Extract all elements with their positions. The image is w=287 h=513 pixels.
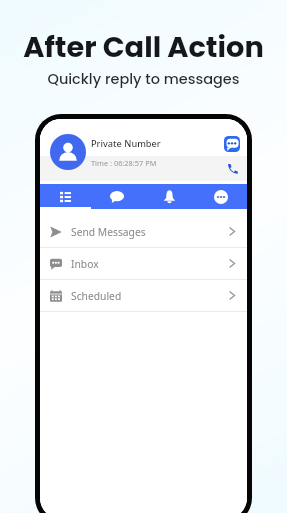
button[interactable]: Call: [227, 163, 238, 174]
staticText: Inbox: [71, 257, 99, 271]
button[interactable]: Inbox: [40, 248, 247, 279]
button[interactable]: Send Messages: [40, 216, 247, 247]
button[interactable]: Notifications: [143, 184, 195, 209]
button[interactable]: Messages: [91, 184, 143, 209]
staticText: Time : 06:28:57 PM: [91, 158, 157, 168]
staticText: Private Number: [91, 137, 161, 150]
staticText: Scheduled: [71, 289, 122, 303]
staticText: Quickly reply to messages: [47, 69, 240, 89]
staticText: Send Messages: [71, 225, 146, 239]
button[interactable]: Lists: [40, 184, 91, 209]
button[interactable]: More: [195, 184, 247, 209]
button[interactable]: Scheduled: [40, 280, 247, 311]
button[interactable]: Messages: [224, 136, 240, 152]
staticText: After Call Action: [23, 27, 264, 67]
